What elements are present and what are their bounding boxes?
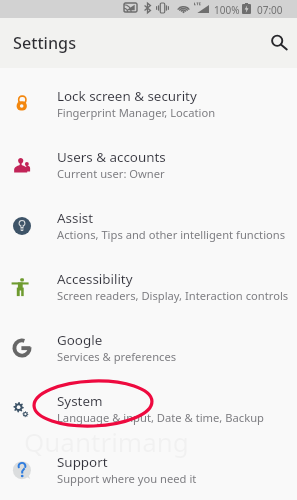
staticText: Support: [57, 453, 108, 471]
button[interactable]: Lock screen & security: [0, 73, 297, 134]
button[interactable]: Accessibility: [0, 256, 297, 317]
button[interactable]: Google: [0, 317, 297, 378]
button[interactable]: Users & accounts: [0, 134, 297, 195]
staticText: Settings: [13, 32, 77, 54]
staticText: Assist: [57, 209, 94, 227]
staticText: 07:00: [257, 3, 283, 17]
staticText: Fingerprint Manager, Location: [57, 105, 216, 120]
button[interactable]: Support: [0, 439, 297, 500]
staticText: Users & accounts: [57, 148, 166, 166]
staticText: Quantrimang: [24, 424, 189, 459]
staticText: Actions, Tips and other intelligent func…: [57, 227, 286, 242]
staticText: Screen readers, Display, Interaction con…: [57, 288, 289, 303]
button[interactable]: Assist: [0, 195, 297, 256]
staticText: 100%: [214, 3, 240, 17]
staticText: Services & preferences: [57, 349, 177, 364]
button[interactable]: System: [0, 378, 297, 439]
staticText: Support where you need it: [57, 471, 197, 486]
staticText: Lock screen & security: [57, 87, 197, 105]
staticText: Language & input, Date & time, Backup: [57, 410, 264, 425]
staticText: Current user: Owner: [57, 166, 165, 181]
staticText: Google: [57, 331, 103, 349]
staticText: Accessibility: [57, 270, 133, 288]
button[interactable]: Search: [261, 25, 295, 59]
staticText: System: [57, 392, 103, 410]
